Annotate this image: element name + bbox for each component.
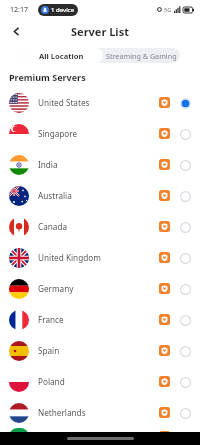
staticText: Server List <box>71 24 129 39</box>
staticText: Australia <box>38 190 72 201</box>
button[interactable]: Premium server <box>159 190 170 201</box>
button[interactable]: Select server <box>178 375 192 389</box>
button[interactable]: Spain <box>0 335 200 366</box>
staticText: Ireland <box>38 431 66 442</box>
button[interactable]: Premium server <box>159 314 170 325</box>
button[interactable]: Select server <box>178 158 192 172</box>
button[interactable]: Premium server <box>159 431 170 442</box>
button[interactable]: United States <box>0 87 200 118</box>
button[interactable]: India <box>0 149 200 180</box>
staticText: Canada <box>38 221 68 232</box>
button[interactable]: Ireland <box>0 428 200 445</box>
staticText: Premium Servers <box>9 71 86 83</box>
staticText: Netherlands <box>38 407 86 418</box>
staticText: 1 device <box>51 6 75 14</box>
button[interactable]: United Kingdom <box>0 242 200 273</box>
staticText: All Location <box>39 51 84 61</box>
button[interactable]: Select server <box>178 220 192 234</box>
button[interactable]: Premium server <box>159 283 170 294</box>
button[interactable]: All Location <box>20 48 103 63</box>
staticText: United Kingdom <box>38 252 101 263</box>
staticText: Streaming & Gaming <box>106 51 177 61</box>
button[interactable]: Select server <box>178 189 192 203</box>
staticText: United States <box>38 97 90 108</box>
button[interactable]: Select server <box>178 313 192 327</box>
button[interactable]: Select server <box>178 344 192 358</box>
button[interactable]: Premium server <box>159 97 170 108</box>
button[interactable]: Premium server <box>159 345 170 356</box>
button[interactable]: Select server <box>178 282 192 296</box>
button[interactable]: Singapore <box>0 118 200 149</box>
button[interactable]: Germany <box>0 273 200 304</box>
button[interactable]: Netherlands <box>0 397 200 428</box>
button[interactable]: Select server <box>178 406 192 420</box>
button[interactable]: Premium server <box>159 159 170 170</box>
staticText: India <box>38 159 58 170</box>
button[interactable]: Select server <box>178 430 192 444</box>
button[interactable]: Select server <box>178 251 192 265</box>
button[interactable]: Premium server <box>159 376 170 387</box>
button[interactable]: Premium server <box>159 221 170 232</box>
button[interactable]: France <box>0 304 200 335</box>
button[interactable]: Australia <box>0 180 200 211</box>
button[interactable]: Premium server <box>159 407 170 418</box>
button[interactable]: Premium server <box>159 128 170 139</box>
button[interactable]: Selected server <box>178 96 192 110</box>
staticText: 12:17 <box>10 5 28 15</box>
button[interactable]: Premium server <box>159 252 170 263</box>
staticText: Germany <box>38 283 74 294</box>
button[interactable]: Select server <box>178 127 192 141</box>
button[interactable]: Back <box>6 21 26 41</box>
staticText: France <box>38 314 64 325</box>
button[interactable]: Canada <box>0 211 200 242</box>
staticText: Poland <box>38 376 65 387</box>
staticText: 5G <box>164 6 172 13</box>
staticText: Spain <box>38 345 60 356</box>
button[interactable]: Streaming & Gaming <box>103 48 180 63</box>
staticText: Singapore <box>38 128 78 139</box>
button[interactable]: Poland <box>0 366 200 397</box>
